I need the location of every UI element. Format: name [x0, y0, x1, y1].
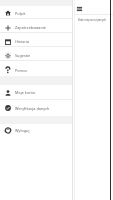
staticText: Moje konto: [15, 90, 36, 95]
staticText: Pomoc: [15, 68, 28, 73]
button[interactable]: Moje konto: [0, 85, 73, 100]
button[interactable]: Open navigation menu: [74, 4, 85, 14]
button[interactable]: Weryfikacja danych: [0, 100, 73, 116]
button[interactable]: Wyloguj: [0, 124, 73, 136]
button[interactable]: Pomoc: [0, 61, 73, 76]
staticText: Brak nieprzeczytanych: [78, 18, 107, 22]
button[interactable]: Historia: [0, 33, 73, 47]
staticText: Sugestie: [15, 53, 31, 58]
button[interactable]: Zapotrzebowanie: [0, 19, 73, 33]
button[interactable]: Pulpit: [0, 6, 73, 19]
staticText: Weryfikacja danych: [15, 106, 50, 111]
staticText: Pulpit: [15, 11, 26, 16]
staticText: Zapotrzebowanie: [15, 25, 46, 30]
staticText: Historia: [15, 39, 29, 44]
staticText: Wyloguj: [15, 128, 30, 133]
button[interactable]: Sugestie: [0, 47, 73, 61]
